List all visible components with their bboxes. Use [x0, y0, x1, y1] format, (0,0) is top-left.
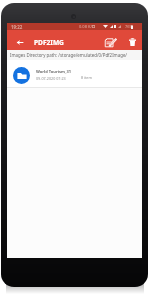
button[interactable]: Delete	[125, 35, 139, 49]
staticText: 0.08 K/s	[79, 24, 94, 29]
staticText: 09-07-2020 07:23	[36, 76, 66, 81]
staticText: PDF2IMG	[34, 38, 64, 47]
button[interactable]: Rename	[103, 34, 118, 49]
button[interactable]: Navigate up	[13, 35, 27, 49]
staticText: 76%	[125, 24, 133, 29]
staticText: World Tourism_31	[36, 69, 72, 74]
staticText: 8 item	[81, 75, 92, 80]
staticText: 19:22	[11, 24, 23, 30]
staticText: Images Directory path: /storage/emulated…	[10, 52, 127, 58]
button[interactable]: World Tourism_31	[7, 60, 142, 87]
